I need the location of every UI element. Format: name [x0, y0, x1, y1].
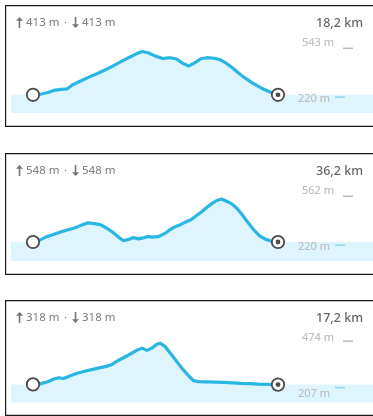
- staticText: 562 m: [302, 182, 335, 197]
- staticText: 207 m: [298, 385, 331, 400]
- staticText: 220 m: [298, 90, 331, 105]
- other: Elevation gain: [16, 17, 23, 28]
- staticText: 548 m: [26, 162, 60, 178]
- button[interactable]: Elevation gain: [5, 300, 373, 416]
- staticText: ·: [64, 309, 68, 325]
- staticText: 17,2 km: [316, 309, 363, 326]
- staticText: ·: [64, 162, 68, 178]
- other: Elevation loss: [72, 17, 79, 28]
- staticText: ·: [64, 14, 68, 30]
- other: Elevation gain: [16, 312, 23, 323]
- staticText: 18,2 km: [316, 14, 363, 31]
- button[interactable]: Elevation gain: [5, 5, 373, 127]
- staticText: 474 m: [302, 329, 335, 344]
- staticText: 36,2 km: [316, 162, 363, 179]
- staticText: 413 m: [82, 14, 116, 30]
- staticText: 318 m: [26, 309, 60, 325]
- staticText: 548 m: [82, 162, 116, 178]
- staticText: 318 m: [82, 309, 116, 325]
- other: Elevation loss: [72, 165, 79, 176]
- other: Elevation gain: [16, 165, 23, 176]
- staticText: 413 m: [26, 14, 60, 30]
- other: Elevation loss: [72, 312, 79, 323]
- staticText: 220 m: [298, 238, 331, 253]
- button[interactable]: Elevation gain: [5, 153, 373, 275]
- staticText: 543 m: [302, 34, 335, 49]
